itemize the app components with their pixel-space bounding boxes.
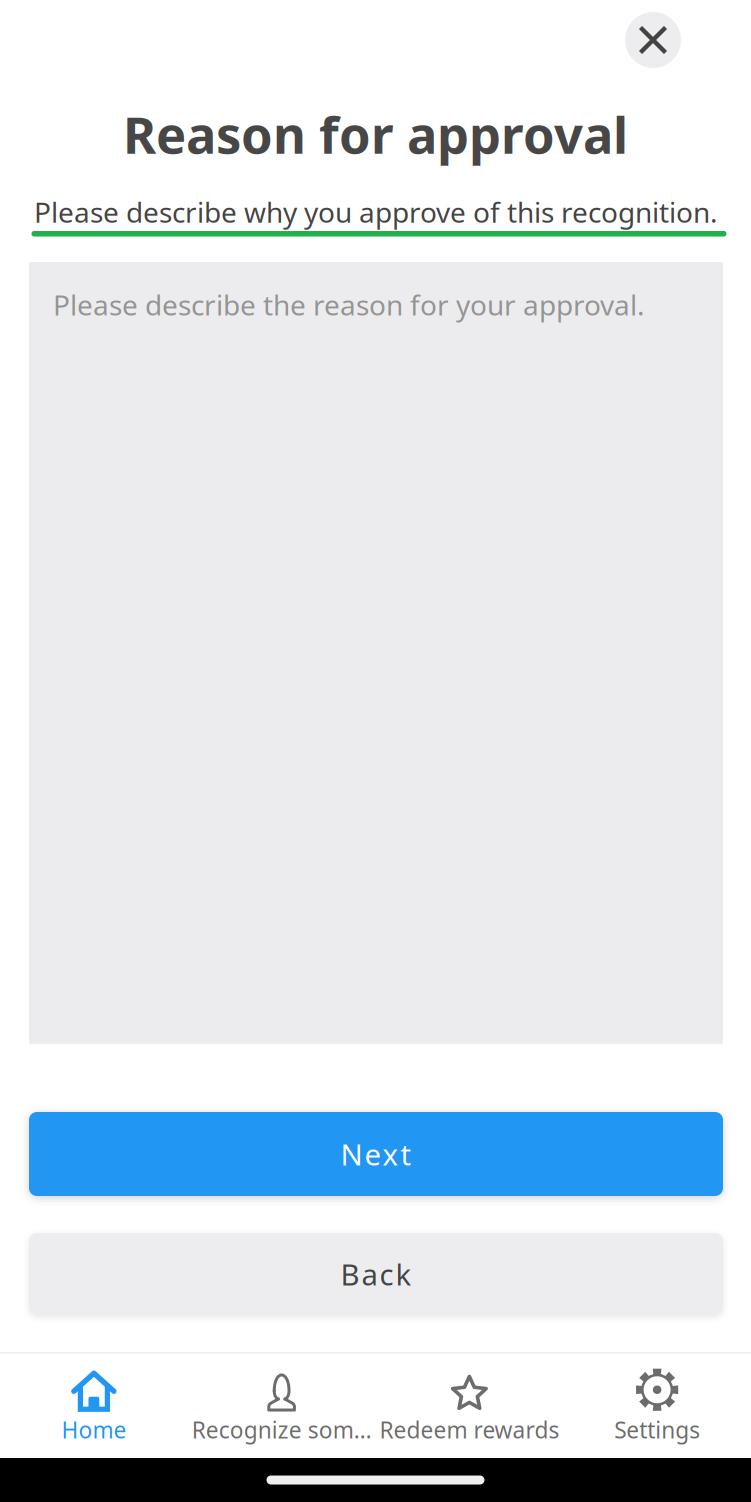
staticText: Back xyxy=(340,1254,411,1293)
button[interactable]: Home xyxy=(0,1354,188,1458)
button[interactable]: Redeem rewards xyxy=(375,1354,563,1458)
button[interactable]: Recognize som… xyxy=(188,1354,376,1458)
staticText: Reason for approval xyxy=(123,100,628,168)
button[interactable]: Close xyxy=(625,12,681,68)
staticText: Please describe the reason for your appr… xyxy=(53,286,645,323)
staticText: Recognize som… xyxy=(192,1415,372,1445)
button[interactable]: Settings xyxy=(563,1354,751,1458)
button[interactable]: Next xyxy=(29,1112,723,1196)
staticText: Home xyxy=(61,1415,126,1445)
staticText: Next xyxy=(340,1134,411,1173)
button[interactable]: Back xyxy=(29,1233,723,1315)
staticText: Redeem rewards xyxy=(379,1415,559,1445)
staticText: Settings xyxy=(614,1415,700,1445)
staticText: Please describe why you approve of this … xyxy=(34,193,718,231)
